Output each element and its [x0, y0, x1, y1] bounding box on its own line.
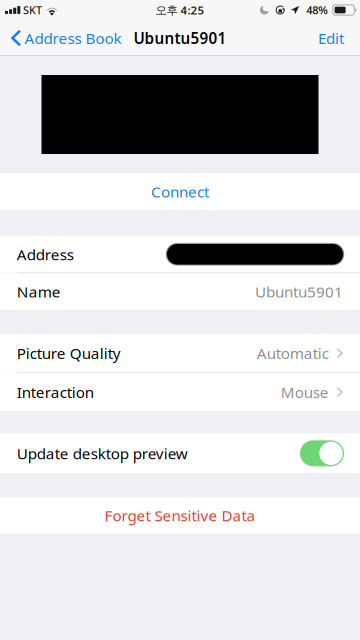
button[interactable]: Forget Sensitive Data	[0, 497, 360, 533]
staticText: Ubuntu5901	[133, 28, 226, 48]
button[interactable]: Update desktop preview	[300, 440, 344, 466]
staticText: Name	[17, 281, 61, 302]
staticText: Address Book	[24, 28, 121, 48]
button[interactable]: Address	[0, 236, 360, 272]
staticText: Ubuntu5901	[255, 281, 343, 302]
staticText: 48%	[306, 3, 328, 17]
staticText: Automatic	[257, 343, 329, 363]
staticText: Connect	[151, 181, 209, 202]
button[interactable]: Connect	[0, 173, 360, 210]
staticText: 오후 4:25	[155, 2, 204, 18]
button[interactable]: Address Book	[0, 20, 129, 56]
staticText: Edit	[318, 28, 344, 48]
staticText: SKT	[23, 3, 42, 17]
button[interactable]: Name	[0, 273, 360, 310]
button[interactable]: Edit	[309, 20, 353, 56]
staticText: Interaction	[17, 382, 94, 402]
staticText: Update desktop preview	[17, 443, 188, 464]
button[interactable]: Interaction	[0, 373, 360, 411]
staticText: Picture Quality	[17, 343, 121, 363]
staticText: Forget Sensitive Data	[104, 505, 255, 526]
staticText: Address	[17, 244, 74, 265]
button[interactable]: Picture Quality	[0, 334, 360, 372]
staticText: Mouse	[281, 382, 329, 402]
